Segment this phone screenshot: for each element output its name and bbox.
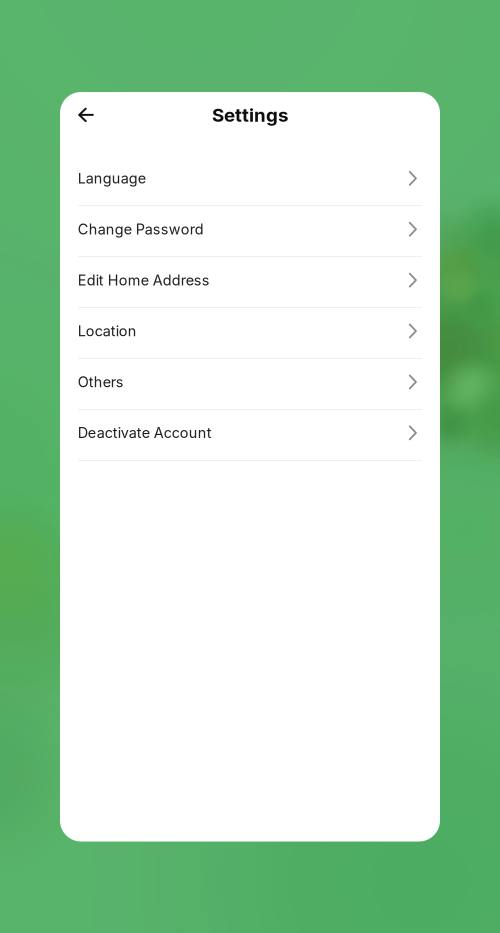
button[interactable]: Others [60, 358, 440, 409]
staticText: Settings [212, 104, 288, 126]
button[interactable]: Change Password [60, 205, 440, 256]
staticText: Deactivate Account [78, 424, 212, 441]
button[interactable]: Edit Home Address [60, 256, 440, 307]
staticText: Language [78, 170, 146, 187]
staticText: Others [78, 373, 124, 391]
staticText: Edit Home Address [78, 271, 210, 289]
button[interactable]: Location [60, 307, 440, 358]
button[interactable]: Language [60, 154, 440, 205]
button[interactable]: Deactivate Account [60, 409, 440, 460]
staticText: Location [78, 322, 137, 340]
button[interactable]: Back [66, 95, 106, 135]
staticText: Change Password [78, 220, 204, 238]
